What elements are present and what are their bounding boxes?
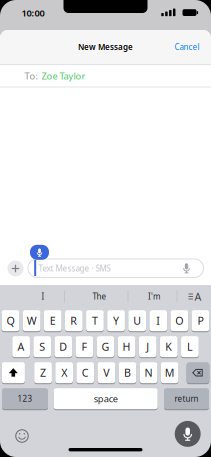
staticText: Z [40, 366, 46, 380]
button[interactable]: C [76, 362, 94, 384]
staticText: T [92, 314, 98, 328]
button[interactable]: X [55, 362, 73, 384]
staticText: N [144, 366, 152, 380]
button[interactable]: N [140, 362, 157, 384]
staticText: Zoe Taylor [41, 70, 85, 82]
button[interactable]: W [23, 310, 40, 332]
staticText: M [165, 366, 175, 380]
staticText: F [81, 340, 87, 354]
button[interactable] [2, 362, 25, 384]
button[interactable]: To: [0, 65, 211, 87]
staticText: W [27, 314, 37, 328]
button[interactable] [175, 421, 201, 447]
button[interactable] [28, 259, 203, 277]
button[interactable]: L [181, 336, 199, 358]
button[interactable]: A [12, 336, 30, 358]
staticText: 123 [17, 393, 32, 404]
button[interactable]: E [44, 310, 62, 332]
staticText: U [133, 314, 141, 328]
staticText: J [146, 340, 149, 354]
staticText: Text Message · SMS [38, 263, 110, 274]
staticText: V [103, 366, 109, 380]
button[interactable]: F [76, 336, 93, 358]
button[interactable]: I [149, 310, 167, 332]
staticText: E [50, 314, 56, 328]
staticText: I [41, 291, 44, 302]
button[interactable]: O [170, 310, 188, 332]
button[interactable]: G [97, 336, 114, 358]
staticText: I [156, 314, 160, 328]
staticText: space [94, 392, 118, 405]
button[interactable]: K [160, 336, 178, 358]
button[interactable]: J [139, 336, 157, 358]
staticText: C [82, 366, 89, 380]
button[interactable]: Y [107, 310, 125, 332]
button[interactable]: P [192, 310, 209, 332]
staticText: 10:00 [21, 7, 44, 19]
button[interactable]: space [54, 388, 158, 410]
staticText: X [61, 366, 67, 380]
button[interactable]: R [65, 310, 83, 332]
staticText: B [124, 366, 131, 380]
staticText: H [123, 340, 131, 354]
button[interactable] [187, 362, 209, 384]
staticText: L [187, 340, 193, 354]
button[interactable]: U [128, 310, 146, 332]
button[interactable]: Cancel [167, 37, 207, 57]
staticText: New Message [78, 42, 133, 52]
button[interactable]: D [54, 336, 72, 358]
button[interactable]: I'm [132, 287, 176, 305]
button[interactable] [16, 430, 28, 442]
staticText: O [175, 314, 183, 328]
button[interactable]: I [15, 287, 71, 305]
staticText: Cancel [174, 42, 199, 52]
staticText: I'm [148, 291, 160, 302]
button[interactable]: S [33, 336, 51, 358]
button[interactable]: T [86, 310, 104, 332]
staticText: S [39, 340, 45, 354]
staticText: A [194, 289, 201, 304]
button[interactable]: M [161, 362, 178, 384]
staticText: K [165, 340, 172, 354]
button[interactable]: V [97, 362, 115, 384]
button[interactable]: The [71, 287, 127, 305]
staticText: return [174, 393, 198, 404]
staticText: A [18, 340, 25, 354]
staticText: Y [113, 314, 119, 328]
staticText: The [92, 291, 106, 302]
button[interactable] [7, 260, 23, 276]
staticText: D [59, 340, 67, 354]
button[interactable]: 123 [2, 388, 48, 410]
staticText: Q [6, 314, 14, 328]
button[interactable]: B [119, 362, 136, 384]
staticText: P [197, 314, 203, 328]
button[interactable]: return [164, 388, 209, 410]
staticText: G [101, 340, 109, 354]
staticText: To: [24, 70, 38, 82]
button[interactable] [182, 288, 208, 304]
button[interactable]: Q [2, 310, 19, 332]
button[interactable]: Z [34, 362, 52, 384]
button[interactable]: H [118, 336, 135, 358]
staticText: R [70, 314, 77, 328]
